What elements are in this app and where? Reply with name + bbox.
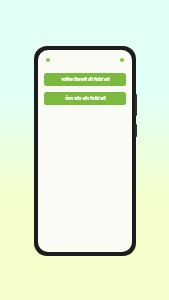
button[interactable]: मासिक विवरणी की रिपोर्ट करें [44,73,126,86]
staticText: वेतन कोड और रिपोर्ट करें [65,96,106,102]
staticText: मासिक विवरणी की रिपोर्ट करें [61,77,110,83]
other: Power [135,124,137,137]
button[interactable]: वेतन कोड और रिपोर्ट करें [44,92,126,105]
other: Volume [135,94,137,116]
